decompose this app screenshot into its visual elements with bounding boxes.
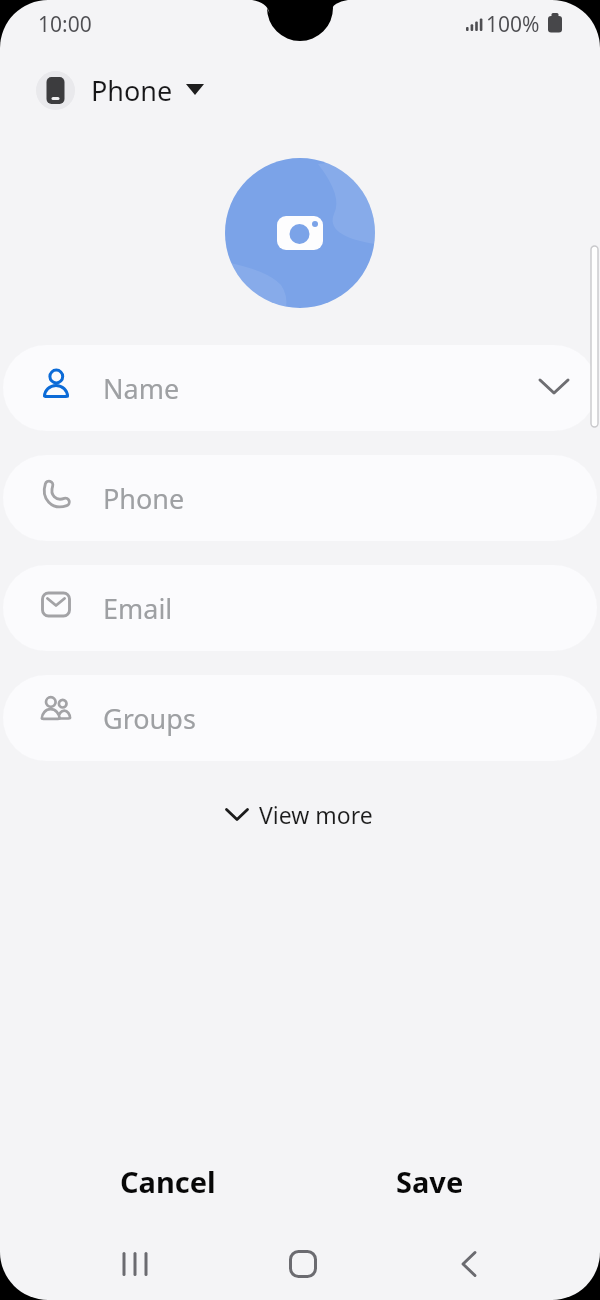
staticText: Phone: [91, 72, 173, 108]
button[interactable]: [263, 1234, 343, 1294]
button[interactable]: Phone: [30, 64, 220, 116]
staticText: View more: [259, 799, 373, 830]
button[interactable]: Email: [3, 565, 597, 651]
button[interactable]: Groups: [3, 675, 597, 761]
staticText: Groups: [103, 700, 196, 736]
button[interactable]: Cancel: [95, 1148, 241, 1214]
staticText: 100%: [486, 10, 540, 39]
button[interactable]: [430, 1234, 510, 1294]
staticText: Save: [396, 1162, 464, 1201]
staticText: Name: [103, 370, 180, 406]
button[interactable]: [225, 158, 375, 308]
staticText: Email: [103, 590, 173, 626]
button[interactable]: Phone: [3, 455, 597, 541]
button[interactable]: View more: [210, 788, 390, 840]
button[interactable]: Save: [360, 1148, 500, 1214]
staticText: Phone: [103, 480, 185, 516]
button[interactable]: [94, 1234, 174, 1294]
staticText: 10:00: [38, 10, 92, 39]
button[interactable]: Name: [3, 345, 597, 431]
staticText: Cancel: [120, 1162, 216, 1201]
